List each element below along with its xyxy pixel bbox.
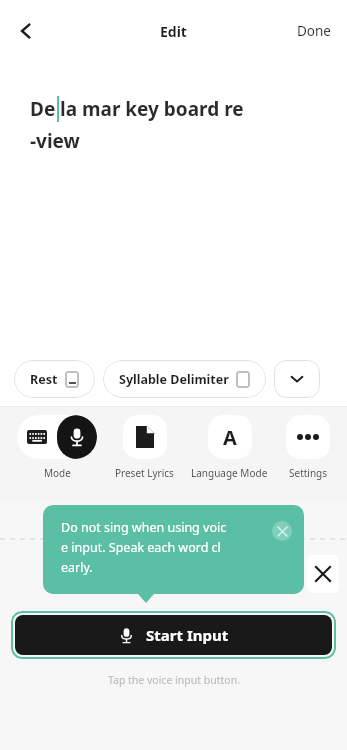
staticText: De: [30, 96, 56, 122]
button[interactable]: Preset Lyrics: [115, 415, 174, 480]
button[interactable]: More options: [274, 360, 320, 398]
staticText: Syllable Delimiter: [119, 371, 229, 388]
staticText: Start Input: [146, 625, 229, 645]
staticText: Edit: [160, 22, 187, 41]
staticText: Rest: [30, 371, 58, 388]
staticText: -view: [30, 128, 80, 154]
staticText: e input. Speak each word cl: [61, 539, 221, 556]
button[interactable]: De: [0, 62, 347, 352]
button[interactable]: Mode: [17, 415, 97, 459]
button[interactable]: Syllable Delimiter: [103, 360, 266, 398]
staticText: Do not sing when using voic: [61, 519, 227, 536]
button[interactable]: Rest: [14, 360, 95, 398]
staticText: Preset Lyrics: [115, 466, 174, 480]
button[interactable]: Back: [4, 9, 48, 53]
button[interactable]: Do not sing when using voic: [43, 505, 304, 594]
staticText: A: [223, 424, 237, 451]
button[interactable]: Language Mode: [191, 415, 268, 480]
button[interactable]: Settings: [286, 415, 330, 480]
button[interactable]: Done: [281, 12, 347, 50]
staticText: Mode: [44, 466, 71, 480]
staticText: early.: [61, 559, 93, 576]
staticText: Tap the voice input button.: [108, 673, 240, 687]
staticText: Done: [297, 22, 331, 40]
button[interactable]: Start Input: [15, 615, 332, 655]
button[interactable]: Dismiss tip: [272, 521, 292, 541]
staticText: Language Mode: [191, 466, 268, 480]
button[interactable]: Clear: [307, 555, 339, 593]
staticText: la mar key board re: [60, 96, 244, 122]
staticText: Settings: [289, 466, 328, 480]
